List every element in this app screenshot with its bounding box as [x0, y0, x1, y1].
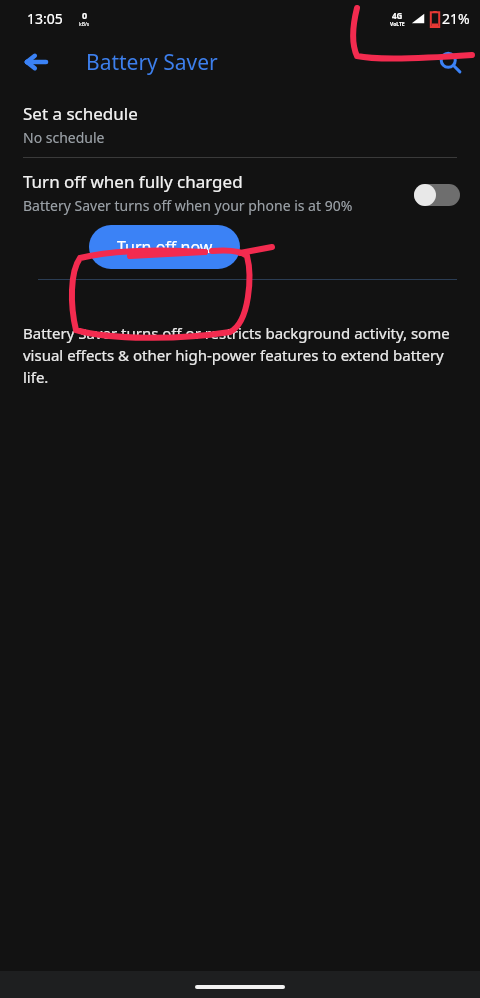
staticText: Set a schedule [23, 102, 138, 125]
staticText: Battery Saver turns off when your phone … [23, 196, 353, 215]
staticText: Battery Saver turns off or restricts bac… [23, 323, 456, 388]
staticText: 13:05 [27, 9, 63, 28]
staticText: Turn off when fully charged [23, 170, 243, 193]
staticText: 0 [82, 9, 88, 21]
button[interactable]: Back [14, 40, 58, 84]
staticText: 4G [392, 10, 403, 21]
staticText: No schedule [23, 128, 105, 147]
staticText: Turn off now [117, 236, 213, 258]
button[interactable]: Set a schedule [0, 102, 480, 147]
button[interactable]: Search [428, 40, 472, 84]
staticText: VoLTE [390, 21, 405, 28]
button[interactable]: Turn off when fully charged [0, 170, 480, 215]
button[interactable]: Turn off now [89, 225, 240, 269]
staticText: Battery Saver [86, 48, 218, 77]
button[interactable]: Turn off when fully charged toggle [414, 184, 460, 206]
staticText: 21% [442, 9, 470, 28]
staticText: kB/s [79, 21, 90, 28]
